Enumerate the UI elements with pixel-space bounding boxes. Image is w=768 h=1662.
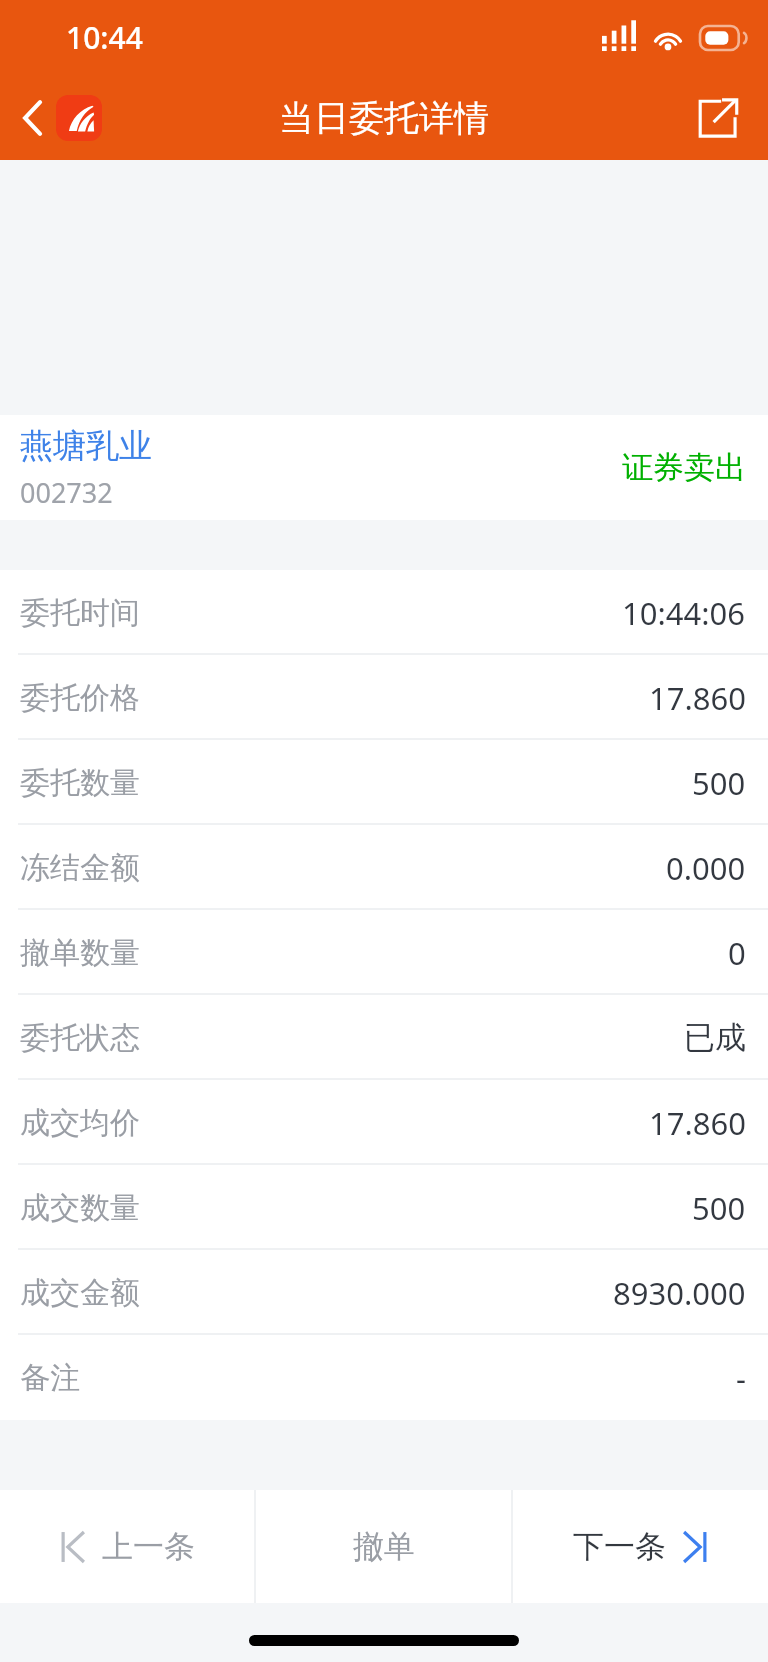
button[interactable]: 成交数量 <box>0 1165 768 1250</box>
button[interactable]: Back <box>14 87 110 149</box>
staticText: 冻结金额 <box>20 849 140 887</box>
button[interactable]: 委托价格 <box>0 655 768 740</box>
button[interactable]: 备注 <box>0 1335 768 1420</box>
button[interactable]: 成交均价 <box>0 1080 768 1165</box>
staticText: 当日委托详情 <box>279 96 489 140</box>
staticText: 10:44 <box>66 17 143 58</box>
staticText: 002732 <box>20 474 113 511</box>
button[interactable]: 上一条 <box>0 1490 254 1603</box>
button[interactable]: 冻结金额 <box>0 825 768 910</box>
staticText: 成交均价 <box>20 1104 140 1142</box>
button[interactable]: 成交金额 <box>0 1250 768 1335</box>
button[interactable]: 委托状态 <box>0 995 768 1080</box>
staticText: 撤单 <box>353 1527 415 1566</box>
staticText: 上一条 <box>102 1527 195 1566</box>
staticText: 8930.000 <box>613 1272 746 1314</box>
button[interactable]: 委托时间 <box>0 570 768 655</box>
staticText: 0.000 <box>666 847 746 889</box>
staticText: - <box>736 1357 746 1399</box>
button[interactable]: 委托数量 <box>0 740 768 825</box>
button[interactable]: 燕塘乳业 <box>0 415 768 520</box>
button[interactable]: Share <box>688 89 746 147</box>
button[interactable]: 撤单 <box>256 1490 511 1603</box>
staticText: 成交数量 <box>20 1189 140 1227</box>
staticText: 下一条 <box>573 1527 666 1566</box>
staticText: 委托状态 <box>20 1019 140 1057</box>
staticText: 燕塘乳业 <box>20 425 152 467</box>
staticText: 500 <box>692 1187 746 1229</box>
staticText: 撤单数量 <box>20 934 140 972</box>
button[interactable]: 下一条 <box>513 1490 768 1603</box>
staticText: 0 <box>728 932 746 974</box>
staticText: 委托价格 <box>20 679 140 717</box>
button[interactable]: 撤单数量 <box>0 910 768 995</box>
staticText: 17.860 <box>649 1102 746 1144</box>
staticText: 17.860 <box>649 677 746 719</box>
staticText: 备注 <box>20 1359 80 1397</box>
staticText: 委托时间 <box>20 594 140 632</box>
staticText: 已成 <box>684 1018 746 1057</box>
staticText: 证券卖出 <box>0 448 746 487</box>
staticText: 成交金额 <box>20 1274 140 1312</box>
staticText: 10:44:06 <box>622 592 746 634</box>
staticText: 500 <box>692 762 746 804</box>
staticText: 委托数量 <box>20 764 140 802</box>
